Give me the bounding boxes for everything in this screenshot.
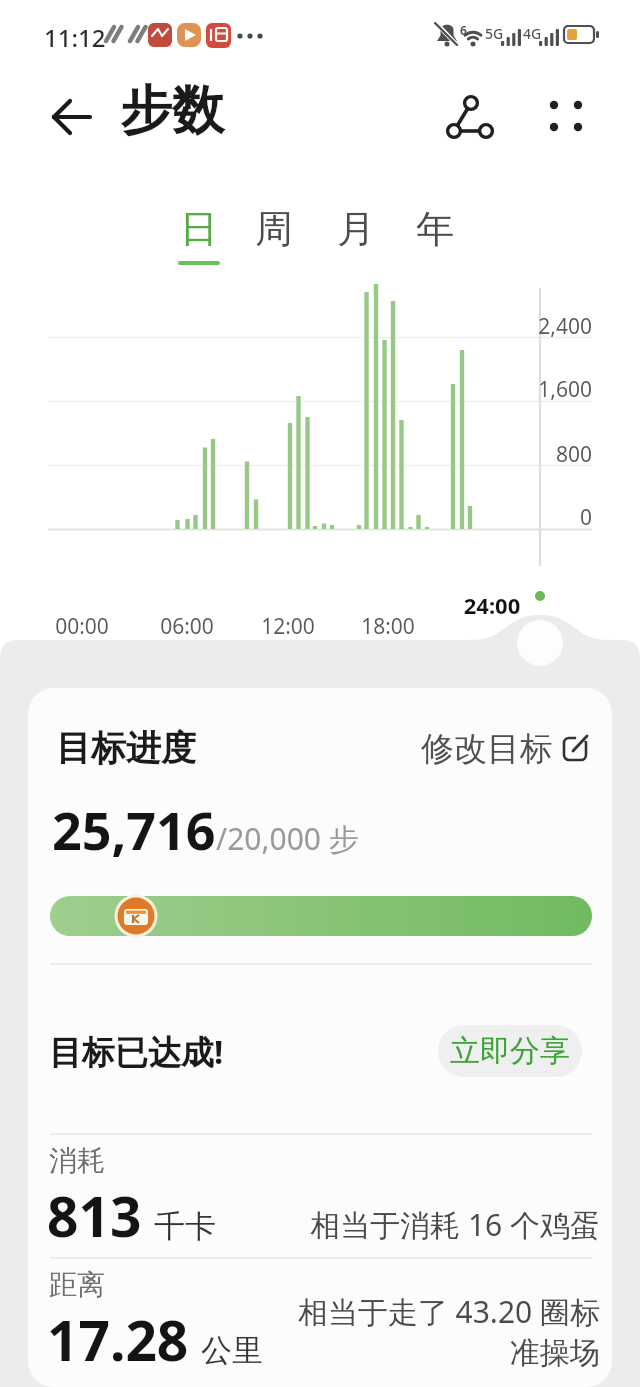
staticText: 相当于消耗 16 个鸡蛋: [228, 1204, 600, 1245]
staticText: 25,716: [52, 794, 216, 865]
staticText: 步数: [120, 78, 224, 144]
button[interactable]: 年: [411, 201, 459, 271]
button[interactable]: 周: [250, 201, 298, 271]
staticText: 06:00: [147, 612, 227, 641]
staticText: 周: [255, 205, 293, 253]
staticText: 月: [337, 205, 375, 253]
staticText: 日: [180, 205, 218, 253]
staticText: 目标已达成!: [49, 1029, 224, 1074]
staticText: 修改目标: [421, 728, 553, 768]
staticText: 11:12: [44, 21, 106, 54]
staticText: 2,400: [502, 312, 592, 341]
staticText: 12:00: [248, 612, 328, 641]
staticText: 24:00: [452, 590, 532, 620]
staticText: 813: [47, 1178, 142, 1253]
button[interactable]: [540, 88, 592, 140]
button[interactable]: [40, 85, 100, 145]
staticText: 年: [416, 205, 454, 253]
staticText: 0: [502, 503, 592, 532]
button[interactable]: 月: [332, 201, 380, 271]
button[interactable]: [438, 90, 500, 146]
staticText: 6: [460, 22, 467, 38]
staticText: 立即分享: [450, 1032, 570, 1070]
staticText: 00:00: [42, 612, 122, 641]
staticText: 17.28: [47, 1302, 189, 1377]
staticText: 800: [502, 440, 592, 469]
staticText: 目标进度: [56, 726, 196, 770]
staticText: 距离: [49, 1267, 105, 1302]
button[interactable]: 修改目标: [421, 728, 590, 768]
staticText: 18:00: [348, 612, 428, 641]
staticText: /20,000 步: [216, 818, 359, 859]
button[interactable]: 日: [175, 201, 223, 271]
staticText: 5G: [485, 24, 504, 43]
staticText: 消耗: [49, 1143, 105, 1178]
staticText: 公里: [201, 1331, 263, 1370]
button[interactable]: 立即分享: [438, 1025, 582, 1077]
staticText: 1,600: [502, 375, 592, 404]
staticText: 千卡: [154, 1207, 216, 1246]
staticText: 相当于走了 43.20 圈标 准操场: [228, 1291, 600, 1372]
staticText: 4G: [523, 24, 542, 43]
